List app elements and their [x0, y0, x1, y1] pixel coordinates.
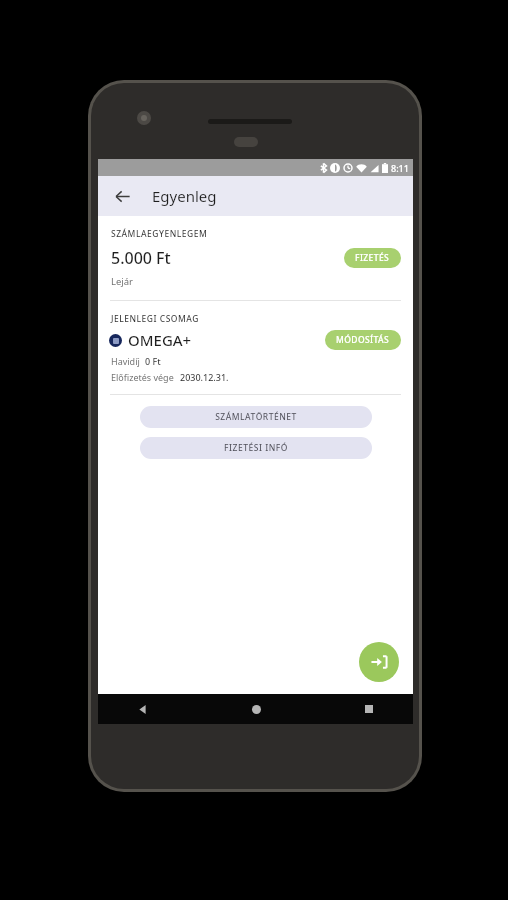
- staticText: FIZETÉSI INFÓ: [224, 442, 288, 454]
- staticText: Lejár: [111, 275, 134, 288]
- staticText: Egyenleg: [152, 186, 217, 206]
- button[interactable]: FIZETÉS: [344, 248, 401, 268]
- staticText: 8:11: [391, 162, 409, 174]
- button[interactable]: FIZETÉSI INFÓ: [140, 437, 372, 459]
- staticText: OMEGA+: [128, 330, 192, 350]
- button[interactable]: Back: [106, 180, 138, 212]
- staticText: Havidíj: [111, 355, 140, 367]
- button[interactable]: MÓDOSÍTÁS: [325, 330, 401, 350]
- staticText: SZÁMLAEGYENLEGEM: [111, 228, 208, 240]
- button[interactable]: Bejelentkezés: [359, 642, 399, 682]
- staticText: FIZETÉS: [355, 252, 390, 264]
- staticText: 5.000 Ft: [111, 247, 171, 269]
- staticText: MÓDOSÍTÁS: [336, 334, 390, 346]
- button[interactable]: Home: [244, 697, 268, 721]
- button[interactable]: Recents: [357, 697, 381, 721]
- staticText: Előfizetés vége: [111, 371, 174, 383]
- staticText: SZÁMLATÖRTÉNET: [215, 411, 297, 423]
- staticText: JELENLEGI CSOMAG: [111, 313, 199, 325]
- staticText: 0 Ft: [145, 355, 161, 367]
- button[interactable]: SZÁMLATÖRTÉNET: [140, 406, 372, 428]
- staticText: 2030.12.31.: [180, 371, 229, 383]
- button[interactable]: Back: [130, 697, 154, 721]
